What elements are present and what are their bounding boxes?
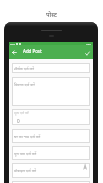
staticText: शीर्षक दर्ज करें (14, 66, 34, 71)
button[interactable]: Save (83, 49, 92, 58)
staticText: विवरण दर्ज करें (14, 82, 35, 87)
button[interactable]: मोबाइल दर्ज करें (12, 163, 90, 178)
button[interactable]: शीर्षक दर्ज करें (12, 63, 90, 73)
button[interactable]: मूल्य दर्ज करें (12, 109, 90, 125)
staticText: 9:23 (10, 42, 15, 45)
staticText: मूल्य दर्ज करें (14, 111, 29, 115)
staticText: 0 (17, 118, 20, 124)
button[interactable]: विवरण दर्ज करें (12, 77, 90, 106)
staticText: घर का नाम दर्ज करें (14, 134, 41, 139)
button[interactable]: Back (10, 48, 19, 57)
staticText: मोबाइल दर्ज करें (14, 168, 37, 173)
staticText: Add Post (23, 48, 42, 54)
staticText: पूरा पता दर्ज करें (14, 151, 37, 156)
button[interactable]: घर का नाम दर्ज करें (12, 129, 90, 143)
button[interactable]: पूरा पता दर्ज करें (12, 146, 90, 160)
button[interactable]: पिन कोड (12, 181, 90, 183)
staticText: पोस्ट (46, 10, 57, 18)
staticText: 73% (86, 42, 91, 45)
